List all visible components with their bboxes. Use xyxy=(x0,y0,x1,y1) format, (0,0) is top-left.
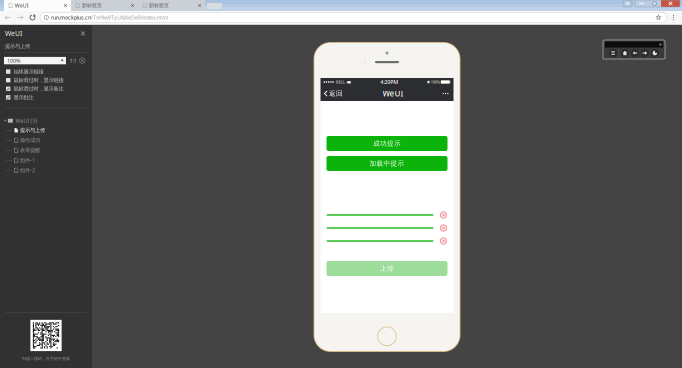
staticText: 加载中提示 xyxy=(369,159,404,168)
staticText: 上传 xyxy=(380,264,394,273)
staticText: 鼠标滑过时，显示备注 xyxy=(13,85,63,92)
button[interactable]: 返回 xyxy=(320,86,343,101)
button[interactable]: Forward xyxy=(14,11,26,24)
button[interactable]: 表单提醒 xyxy=(6,145,90,155)
button[interactable]: 组件-1 xyxy=(6,155,90,165)
button[interactable]: 新标签页 xyxy=(138,0,205,11)
button[interactable]: Close window xyxy=(661,0,680,7)
button[interactable]: 操作成功 xyxy=(6,135,90,145)
button[interactable]: 上传 xyxy=(326,261,447,276)
staticText: ✕ xyxy=(442,213,445,217)
staticText: 提示与上传 xyxy=(5,43,30,49)
button[interactable]: Cancel upload xyxy=(439,237,447,245)
staticText: 100% xyxy=(7,57,20,64)
staticText: 始终显示链接 xyxy=(13,68,43,75)
staticText: 操作成功 xyxy=(20,137,40,144)
button[interactable]: Cancel upload xyxy=(439,224,447,232)
staticText: 显示批注 xyxy=(13,94,33,101)
button[interactable]: Restore down xyxy=(623,0,632,7)
button[interactable]: WeUI xyxy=(4,0,71,11)
staticText: 扫描二维码，在手机中查看 xyxy=(22,356,70,361)
staticText: 鼠标滑过时，显示链接 xyxy=(13,77,63,83)
staticText: 新标签页 xyxy=(149,2,169,9)
button[interactable]: 新标签页 xyxy=(71,0,138,11)
button[interactable]: 显示批注 xyxy=(6,93,88,102)
button[interactable]: Chrome menu xyxy=(667,11,680,24)
button[interactable]: 鼠标滑过时，显示备注 xyxy=(6,84,88,93)
button[interactable]: run.mockplus.cn xyxy=(39,12,667,22)
staticText: 新标签页 xyxy=(82,2,102,9)
button[interactable]: 加载中提示 xyxy=(326,156,447,171)
staticText: WeUI (5) xyxy=(15,117,37,124)
button[interactable]: 始终显示链接 xyxy=(6,67,88,76)
staticText: run.mockplus.cn xyxy=(51,14,91,21)
button[interactable]: Back xyxy=(2,11,14,24)
button[interactable]: Previous page xyxy=(630,48,640,58)
button[interactable]: 鼠标滑过时，显示链接 xyxy=(6,76,88,84)
staticText: 组件-2 xyxy=(20,167,35,174)
button[interactable]: Reload this page xyxy=(26,11,39,24)
button[interactable]: More options xyxy=(443,86,453,101)
staticText: WeUI xyxy=(15,2,29,9)
staticText: 1:1 xyxy=(69,57,76,64)
button[interactable]: Maximize xyxy=(648,0,661,7)
staticText: ✕ xyxy=(442,239,445,243)
staticText: 4:20PM xyxy=(380,78,398,86)
staticText: 100% xyxy=(430,79,441,85)
button[interactable]: Close panel xyxy=(79,29,87,37)
button[interactable]: New tab xyxy=(205,0,224,11)
button[interactable]: Cancel upload xyxy=(439,211,447,219)
staticText: 表单提醒 xyxy=(20,147,40,154)
staticText: ✕ xyxy=(442,226,445,230)
staticText: ✱ xyxy=(427,80,430,84)
button[interactable]: 组件-2 xyxy=(6,165,90,175)
staticText: 返回 xyxy=(329,89,343,98)
button[interactable]: Rotate device xyxy=(650,48,660,58)
staticText: BELL xyxy=(336,79,345,85)
staticText: 成功提示 xyxy=(373,139,401,148)
button[interactable]: 提示与上传 xyxy=(6,125,90,135)
staticText: /Tnr9w9TyUKJXeDeR/index.html xyxy=(91,14,168,21)
staticText: 组件-1 xyxy=(20,157,35,164)
button[interactable]: 成功提示 xyxy=(326,136,447,151)
button[interactable]: Page list xyxy=(608,48,618,58)
button[interactable]: Next page xyxy=(640,48,650,58)
button[interactable]: Home xyxy=(620,48,630,58)
staticText: WeUI xyxy=(382,88,403,99)
staticText: WeUI xyxy=(5,29,22,38)
staticText: 提示与上传 xyxy=(20,127,45,134)
button[interactable]: Minimize xyxy=(635,0,648,7)
